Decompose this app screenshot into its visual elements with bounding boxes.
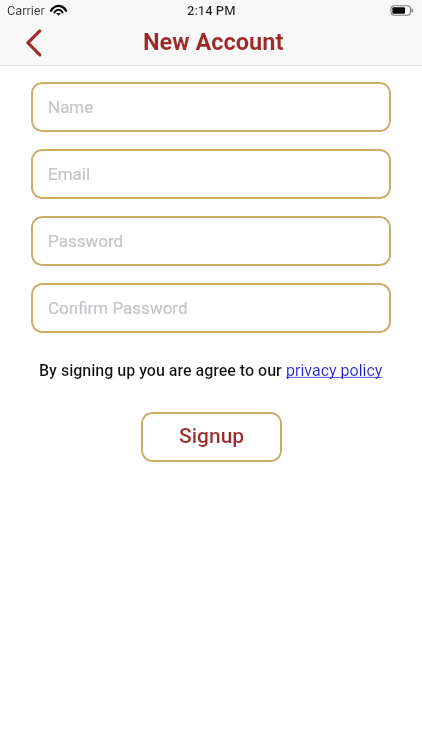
staticText: By signing up you are agree to our [39, 361, 286, 380]
staticText: Confirm Password [48, 298, 188, 318]
button[interactable]: Email [31, 149, 391, 199]
staticText: Password [48, 231, 124, 251]
button[interactable]: Signup [141, 412, 282, 462]
button[interactable]: privacy policy [286, 361, 383, 380]
button[interactable]: Confirm Password [31, 283, 391, 333]
staticText: New Account [143, 28, 284, 56]
staticText: Carrier [7, 3, 45, 18]
button[interactable]: Password [31, 216, 391, 266]
staticText: 2:14 PM [187, 3, 236, 18]
staticText: Name [48, 97, 94, 117]
button[interactable]: Name [31, 82, 391, 132]
staticText: Email [48, 164, 91, 184]
staticText: Signup [179, 424, 245, 449]
button[interactable]: Back [8, 19, 56, 65]
